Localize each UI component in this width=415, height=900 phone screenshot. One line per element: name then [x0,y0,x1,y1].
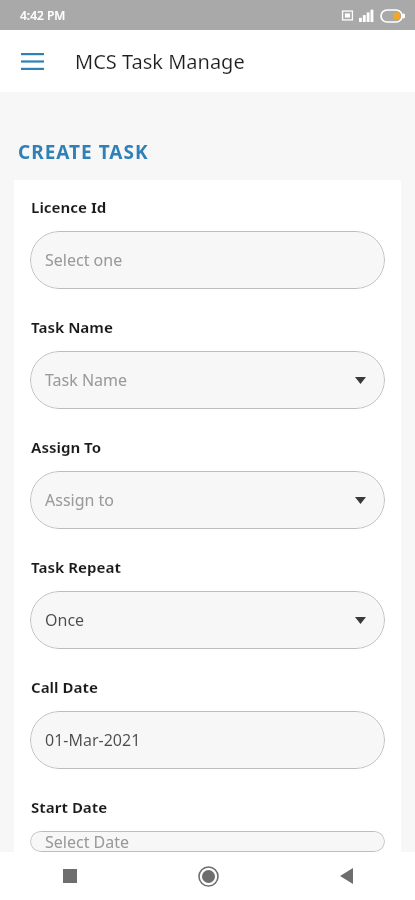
staticText: Select one [45,249,123,271]
staticText: Licence Id [31,197,107,217]
button[interactable]: Back [277,852,415,900]
staticText: CREATE TASK [18,139,149,165]
button[interactable]: Home [139,852,277,900]
staticText: Task Repeat [31,557,121,577]
staticText: MCS Task Manage [75,48,245,75]
staticText: 4:42 PM [20,7,66,23]
button[interactable]: Select Date [30,831,385,852]
button[interactable]: Task Name [30,351,385,409]
staticText: Call Date [31,677,98,697]
button[interactable]: Select one [30,231,385,289]
staticText: Start Date [31,797,108,817]
staticText: 01-Mar-2021 [45,729,141,751]
button[interactable]: 01-Mar-2021 [30,711,385,769]
staticText: Task Name [45,369,128,391]
button[interactable]: Assign to [30,471,385,529]
button[interactable]: Recent apps [0,852,139,900]
staticText: Select Date [45,831,130,852]
button[interactable]: Open navigation menu [10,39,54,83]
staticText: Assign To [31,437,102,457]
staticText: Task Name [31,317,113,337]
button[interactable]: Once [30,591,385,649]
staticText: Once [45,609,85,631]
staticText: Assign to [45,489,115,511]
